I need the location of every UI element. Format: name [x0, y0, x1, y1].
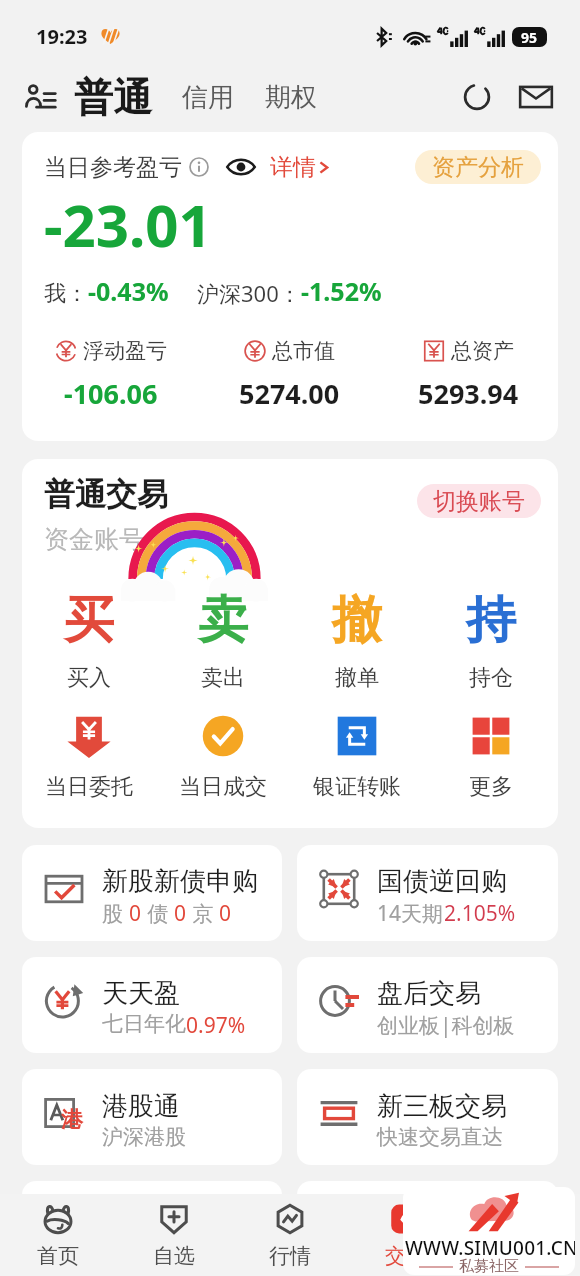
- staticText: 浮动盈亏: [83, 338, 167, 364]
- staticText: 国债逆回购: [377, 865, 507, 898]
- staticText: 总资产: [451, 338, 514, 364]
- button[interactable]: 持: [424, 589, 558, 692]
- staticText: 95: [521, 28, 538, 47]
- staticText: 资金账号·: [44, 521, 151, 555]
- staticText: 首页: [37, 1243, 79, 1269]
- button[interactable]: 交易: [348, 1194, 464, 1276]
- staticText: 京: [187, 899, 219, 928]
- staticText: -23.01: [44, 185, 212, 264]
- staticText: 普通交易: [44, 475, 168, 514]
- staticText: 七日年化: [102, 1011, 186, 1037]
- staticText: 港: [61, 1106, 83, 1134]
- staticText: 沪深300：: [197, 278, 301, 308]
- staticText: 普通: [74, 73, 152, 122]
- staticText: 行情: [269, 1243, 311, 1269]
- button[interactable]: 国债逆回购: [297, 845, 558, 941]
- button[interactable]: [22, 1181, 282, 1276]
- button[interactable]: 新三板交易: [297, 1069, 558, 1165]
- staticText: 交易: [385, 1243, 427, 1269]
- button[interactable]: 港: [22, 1069, 282, 1165]
- staticText: 沪深港股: [102, 1124, 186, 1150]
- staticText: 我：: [44, 280, 88, 308]
- staticText: 持仓: [469, 664, 513, 692]
- button[interactable]: 详情: [270, 153, 333, 182]
- staticText: 银证转账: [313, 773, 401, 801]
- staticText: 0: [129, 899, 142, 928]
- staticText: 股: [102, 899, 129, 928]
- staticText: 资产分析: [432, 153, 524, 182]
- staticText: 更多: [469, 773, 513, 801]
- button[interactable]: 当日委托: [22, 713, 156, 801]
- staticText: 信用: [182, 81, 234, 114]
- staticText: 详情: [270, 153, 316, 182]
- button[interactable]: 当日成交: [156, 713, 290, 801]
- staticText: 私募社区: [459, 1257, 519, 1275]
- staticText: -1.52%: [301, 274, 382, 308]
- button[interactable]: 买: [22, 589, 156, 692]
- staticText: WWW.SIMU001.CN: [405, 1235, 575, 1261]
- button[interactable]: 我的: [464, 1194, 580, 1276]
- button[interactable]: 资产分析: [415, 150, 541, 184]
- staticText: 持: [466, 589, 516, 652]
- staticText: 0: [174, 899, 187, 928]
- staticText: 总市值: [272, 338, 335, 364]
- button[interactable]: 更多: [424, 713, 558, 801]
- staticText: 买入: [67, 664, 111, 692]
- staticText: 我的: [501, 1243, 543, 1269]
- button[interactable]: Account: [22, 79, 58, 115]
- staticText: 自选: [153, 1243, 195, 1269]
- staticText: 当日参考盈亏: [44, 153, 182, 182]
- staticText: -0.43%: [88, 274, 169, 308]
- staticText: 新三板交易: [377, 1090, 507, 1123]
- staticText: 2.105%: [444, 899, 516, 928]
- button[interactable]: Refresh: [460, 80, 494, 114]
- button[interactable]: 卖: [156, 589, 290, 692]
- button[interactable]: 总资产: [379, 338, 558, 412]
- staticText: 5293.94: [418, 375, 519, 412]
- button[interactable]: 普通: [74, 73, 152, 122]
- staticText: -106.06: [64, 375, 158, 412]
- staticText: 债: [142, 899, 174, 928]
- staticText: 19:23: [36, 23, 88, 50]
- button[interactable]: Messages: [518, 79, 554, 115]
- staticText: 14天期: [377, 899, 444, 928]
- button[interactable]: 自选: [116, 1194, 232, 1276]
- staticText: 买: [64, 589, 114, 652]
- staticText: 撤: [332, 589, 382, 652]
- staticText: 当日委托: [45, 773, 133, 801]
- button[interactable]: 期权: [265, 81, 317, 114]
- staticText: 撤单: [335, 664, 379, 692]
- staticText: 0.97%: [186, 1011, 246, 1040]
- button[interactable]: Toggle visibility: [225, 156, 257, 178]
- button[interactable]: 信用: [182, 81, 234, 114]
- staticText: 港股通: [102, 1090, 180, 1123]
- staticText: 卖: [198, 589, 248, 652]
- button[interactable]: 总市值: [200, 338, 379, 412]
- button[interactable]: 撤: [290, 589, 424, 692]
- button[interactable]: 切换账号: [417, 484, 541, 518]
- staticText: 5274.00: [239, 375, 340, 412]
- button[interactable]: 首页: [0, 1194, 116, 1276]
- button[interactable]: [297, 1181, 558, 1276]
- button[interactable]: 银证转账: [290, 713, 424, 801]
- staticText: 期权: [265, 81, 317, 114]
- button[interactable]: 行情: [232, 1194, 348, 1276]
- staticText: 快速交易直达: [377, 1124, 503, 1150]
- staticText: 盘后交易: [377, 977, 481, 1010]
- button[interactable]: 天天盈: [22, 957, 282, 1053]
- staticText: 切换账号: [433, 487, 525, 516]
- button[interactable]: 新股新债申购: [22, 845, 282, 941]
- staticText: 卖出: [201, 664, 245, 692]
- button[interactable]: 浮动盈亏: [22, 338, 200, 412]
- staticText: 0: [219, 899, 232, 928]
- staticText: 当日成交: [179, 773, 267, 801]
- staticText: 创业板|科创板: [377, 1011, 515, 1040]
- staticText: 新股新债申购: [102, 865, 258, 898]
- button[interactable]: 盘后交易: [297, 957, 558, 1053]
- staticText: 天天盈: [102, 977, 180, 1010]
